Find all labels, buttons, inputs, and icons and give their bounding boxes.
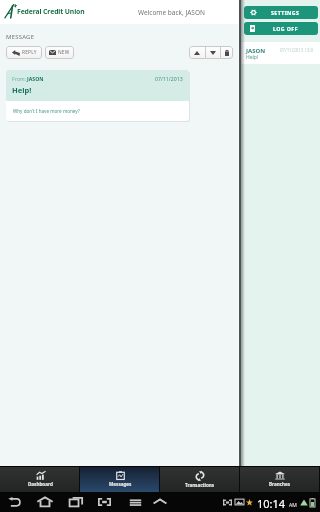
staticText: Transactions — [185, 482, 215, 488]
button[interactable]: Dashboard — [0, 466, 80, 492]
staticText: Branches — [269, 481, 291, 487]
button[interactable]: From: — [6, 70, 189, 121]
staticText: Help! — [12, 85, 32, 95]
button[interactable]: Next message — [206, 46, 220, 59]
button[interactable]: Transactions — [160, 466, 240, 492]
button[interactable]: Previous message — [189, 46, 205, 59]
button[interactable]: Delete message — [221, 46, 233, 59]
button[interactable]: Branches — [240, 466, 320, 492]
staticText: JASON — [246, 47, 266, 55]
staticText: JASON — [27, 75, 44, 82]
staticText: MESSAGE — [6, 33, 35, 41]
staticText: Messages — [109, 481, 132, 487]
button[interactable]: LOG OFF — [244, 22, 318, 35]
staticText: From: — [12, 75, 28, 82]
button[interactable]: JASON — [240, 42, 320, 64]
button[interactable]: Back — [2, 492, 26, 512]
staticText: Federal Credit Union — [17, 7, 85, 16]
staticText: REPLY — [22, 49, 37, 56]
button[interactable]: NEW — [45, 46, 74, 59]
button[interactable]: SETTINGS — [244, 6, 318, 19]
button[interactable]: Messages — [80, 466, 160, 492]
staticText: 10:14 — [257, 496, 286, 511]
staticText: SETTINGS — [271, 9, 300, 16]
button[interactable]: Recent apps — [64, 492, 88, 512]
staticText: Welcome back, JASON — [138, 8, 205, 17]
button[interactable]: Expand — [148, 492, 172, 512]
staticText: Help! — [246, 54, 259, 61]
button[interactable]: Screenshot — [92, 492, 116, 512]
staticText: AM — [289, 502, 297, 509]
staticText: 07/11/2013 — [155, 75, 183, 82]
button[interactable]: REPLY — [6, 46, 42, 59]
button[interactable]: Home — [33, 492, 57, 512]
staticText: LOG OFF — [273, 25, 298, 32]
staticText: Why don't I have more money? — [13, 108, 80, 114]
button[interactable]: Menu — [123, 492, 147, 512]
staticText: NEW — [58, 49, 70, 56]
staticText: Dashboard — [28, 481, 53, 487]
staticText: 07/11/2013 13:0 — [280, 47, 314, 53]
